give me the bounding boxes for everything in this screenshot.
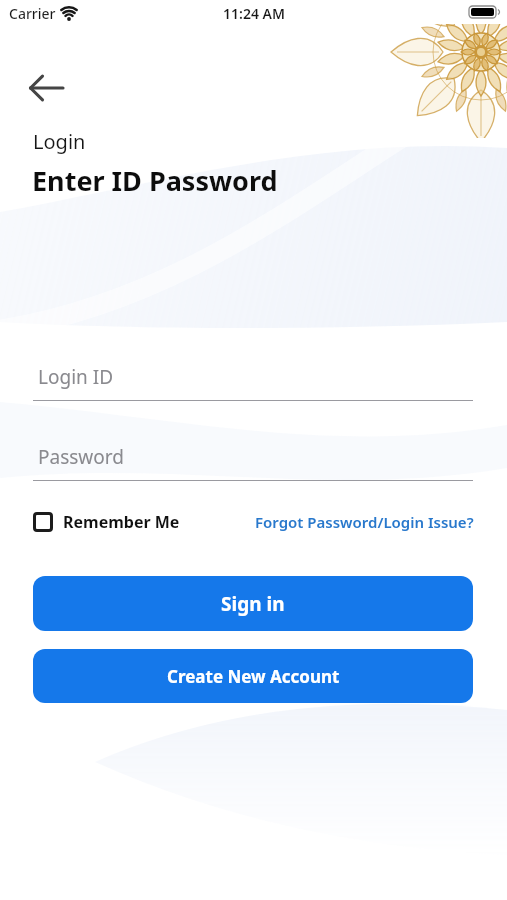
staticText: Carrier	[9, 4, 56, 23]
staticText: Sign in	[221, 591, 285, 617]
staticText: Remember Me	[63, 511, 180, 533]
staticText: Create New Account	[167, 665, 340, 688]
button[interactable]: Create New Account	[33, 649, 473, 703]
staticText: Forgot Password/Login Issue?	[255, 512, 474, 532]
button[interactable]: Password	[33, 440, 473, 481]
staticText: Login ID	[38, 364, 114, 390]
staticText: Password	[38, 444, 124, 470]
button[interactable]: Forgot Password/Login Issue?	[255, 512, 474, 532]
staticText: Enter ID Password	[32, 162, 278, 199]
button[interactable]	[20, 62, 72, 112]
button[interactable]: Login ID	[33, 360, 473, 401]
button[interactable]: Remember Me	[33, 511, 180, 533]
staticText: 11:24 AM	[223, 4, 285, 23]
button[interactable]: Sign in	[33, 576, 473, 631]
staticText: Login	[33, 128, 86, 155]
